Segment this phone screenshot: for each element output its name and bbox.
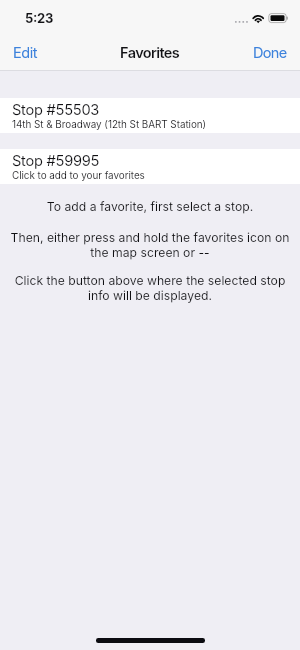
staticText: 14th St & Broadway (12th St BART Station… [12, 118, 207, 130]
staticText: Favorites [120, 44, 180, 62]
staticText: Click to add to your favorites [12, 169, 145, 181]
staticText: To add a favorite, first select a stop. [5, 199, 295, 214]
button[interactable]: Done [240, 40, 300, 68]
staticText: Done [253, 44, 287, 62]
button[interactable]: Stop #55503 [0, 98, 300, 133]
staticText: Then, either press and hold the favorite… [5, 230, 295, 260]
button[interactable]: Edit [0, 40, 51, 68]
staticText: Stop #59995 [12, 152, 100, 170]
staticText: Edit [13, 44, 38, 62]
button[interactable]: Stop #59995 [0, 149, 300, 184]
staticText: 5:23 [25, 10, 54, 26]
staticText: Stop #55503 [12, 101, 100, 119]
staticText: Click the button above where the selecte… [5, 273, 295, 303]
